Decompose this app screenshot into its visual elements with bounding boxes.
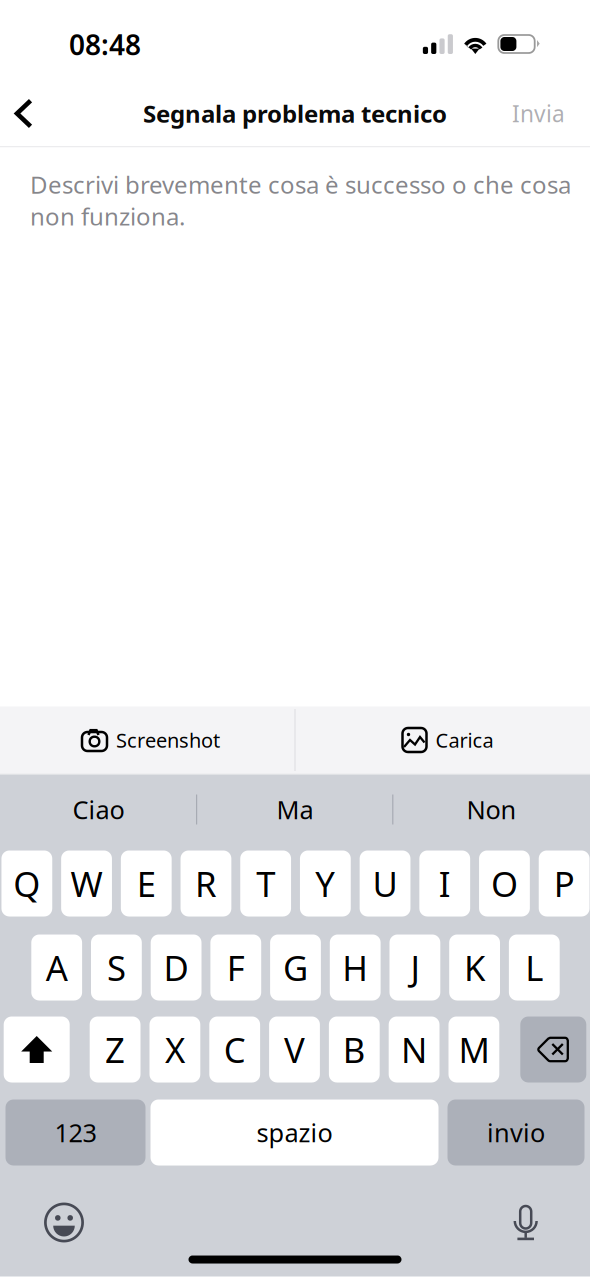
button[interactable]: B (329, 1016, 380, 1082)
button[interactable]: Z (90, 1016, 140, 1082)
button[interactable]: J (389, 934, 440, 1000)
staticText: invio (487, 1116, 545, 1149)
button[interactable]: W (61, 850, 112, 916)
button[interactable]: I (419, 850, 470, 916)
staticText: Carica (435, 727, 493, 753)
staticText: W (70, 860, 102, 906)
button[interactable]: Invia (512, 82, 590, 144)
staticText: D (164, 944, 189, 990)
staticText: U (372, 860, 397, 906)
button[interactable]: F (210, 934, 261, 1000)
staticText: B (343, 1026, 366, 1072)
button[interactable]: Q (1, 850, 52, 916)
button[interactable]: Cancella (520, 1016, 586, 1082)
staticText: C (224, 1026, 246, 1072)
staticText: L (525, 944, 543, 990)
button[interactable]: H (330, 934, 381, 1000)
staticText: V (284, 1026, 305, 1072)
staticText: spazio (256, 1116, 332, 1149)
button[interactable]: N (389, 1016, 439, 1082)
staticText: Non (466, 793, 516, 826)
button[interactable]: O (479, 850, 530, 916)
button[interactable]: P (539, 850, 590, 916)
staticText: T (256, 860, 275, 906)
button[interactable]: Non (393, 774, 590, 844)
staticText: Descrivi brevemente cosa è successo o ch… (30, 168, 571, 232)
staticText: Ma (276, 793, 313, 826)
button[interactable]: A (31, 934, 82, 1000)
button[interactable]: U (360, 850, 410, 916)
staticText: A (46, 944, 68, 990)
button[interactable]: X (149, 1016, 200, 1082)
button[interactable]: invio (447, 1099, 584, 1165)
staticText: I (439, 860, 451, 906)
staticText: Screenshot (116, 727, 220, 753)
staticText: S (107, 944, 126, 990)
staticText: M (458, 1026, 489, 1072)
button[interactable]: S (91, 934, 142, 1000)
button[interactable]: R (180, 850, 231, 916)
button[interactable]: Emoji (44, 1202, 84, 1242)
staticText: Z (105, 1026, 125, 1072)
staticText: 123 (54, 1116, 96, 1149)
button[interactable]: Y (300, 850, 351, 916)
staticText: K (464, 944, 485, 990)
button[interactable]: Screenshot (0, 706, 295, 773)
button[interactable]: V (269, 1016, 320, 1082)
staticText: N (401, 1026, 427, 1072)
staticText: E (137, 860, 156, 906)
staticText: R (195, 860, 217, 906)
button[interactable]: Carica (295, 706, 590, 773)
staticText: Segnala problema tecnico (143, 98, 447, 129)
button[interactable]: G (270, 934, 321, 1000)
staticText: Y (315, 860, 335, 906)
button[interactable]: L (509, 934, 560, 1000)
button[interactable]: K (449, 934, 500, 1000)
button[interactable]: spazio (150, 1099, 438, 1165)
button[interactable]: M (448, 1016, 499, 1082)
staticText: J (410, 944, 419, 990)
staticText: O (491, 860, 518, 906)
staticText: 08:48 (69, 26, 141, 63)
staticText: G (283, 944, 308, 990)
staticText: X (165, 1026, 185, 1072)
button[interactable]: Maiuscole (4, 1016, 70, 1082)
button[interactable]: Dettatura (512, 1201, 540, 1243)
button[interactable]: C (209, 1016, 260, 1082)
button[interactable]: Ciao (0, 774, 197, 844)
staticText: F (227, 944, 245, 990)
button[interactable]: D (151, 934, 201, 1000)
staticText: P (554, 860, 575, 906)
button[interactable]: T (240, 850, 291, 916)
staticText: H (342, 944, 368, 990)
button[interactable]: Indietro (0, 82, 58, 144)
button[interactable]: 123 (5, 1099, 145, 1165)
button[interactable]: E (121, 850, 172, 916)
button[interactable]: Ma (197, 774, 393, 844)
staticText: Q (13, 860, 40, 906)
staticText: Ciao (72, 793, 124, 826)
staticText: Invia (512, 98, 565, 128)
